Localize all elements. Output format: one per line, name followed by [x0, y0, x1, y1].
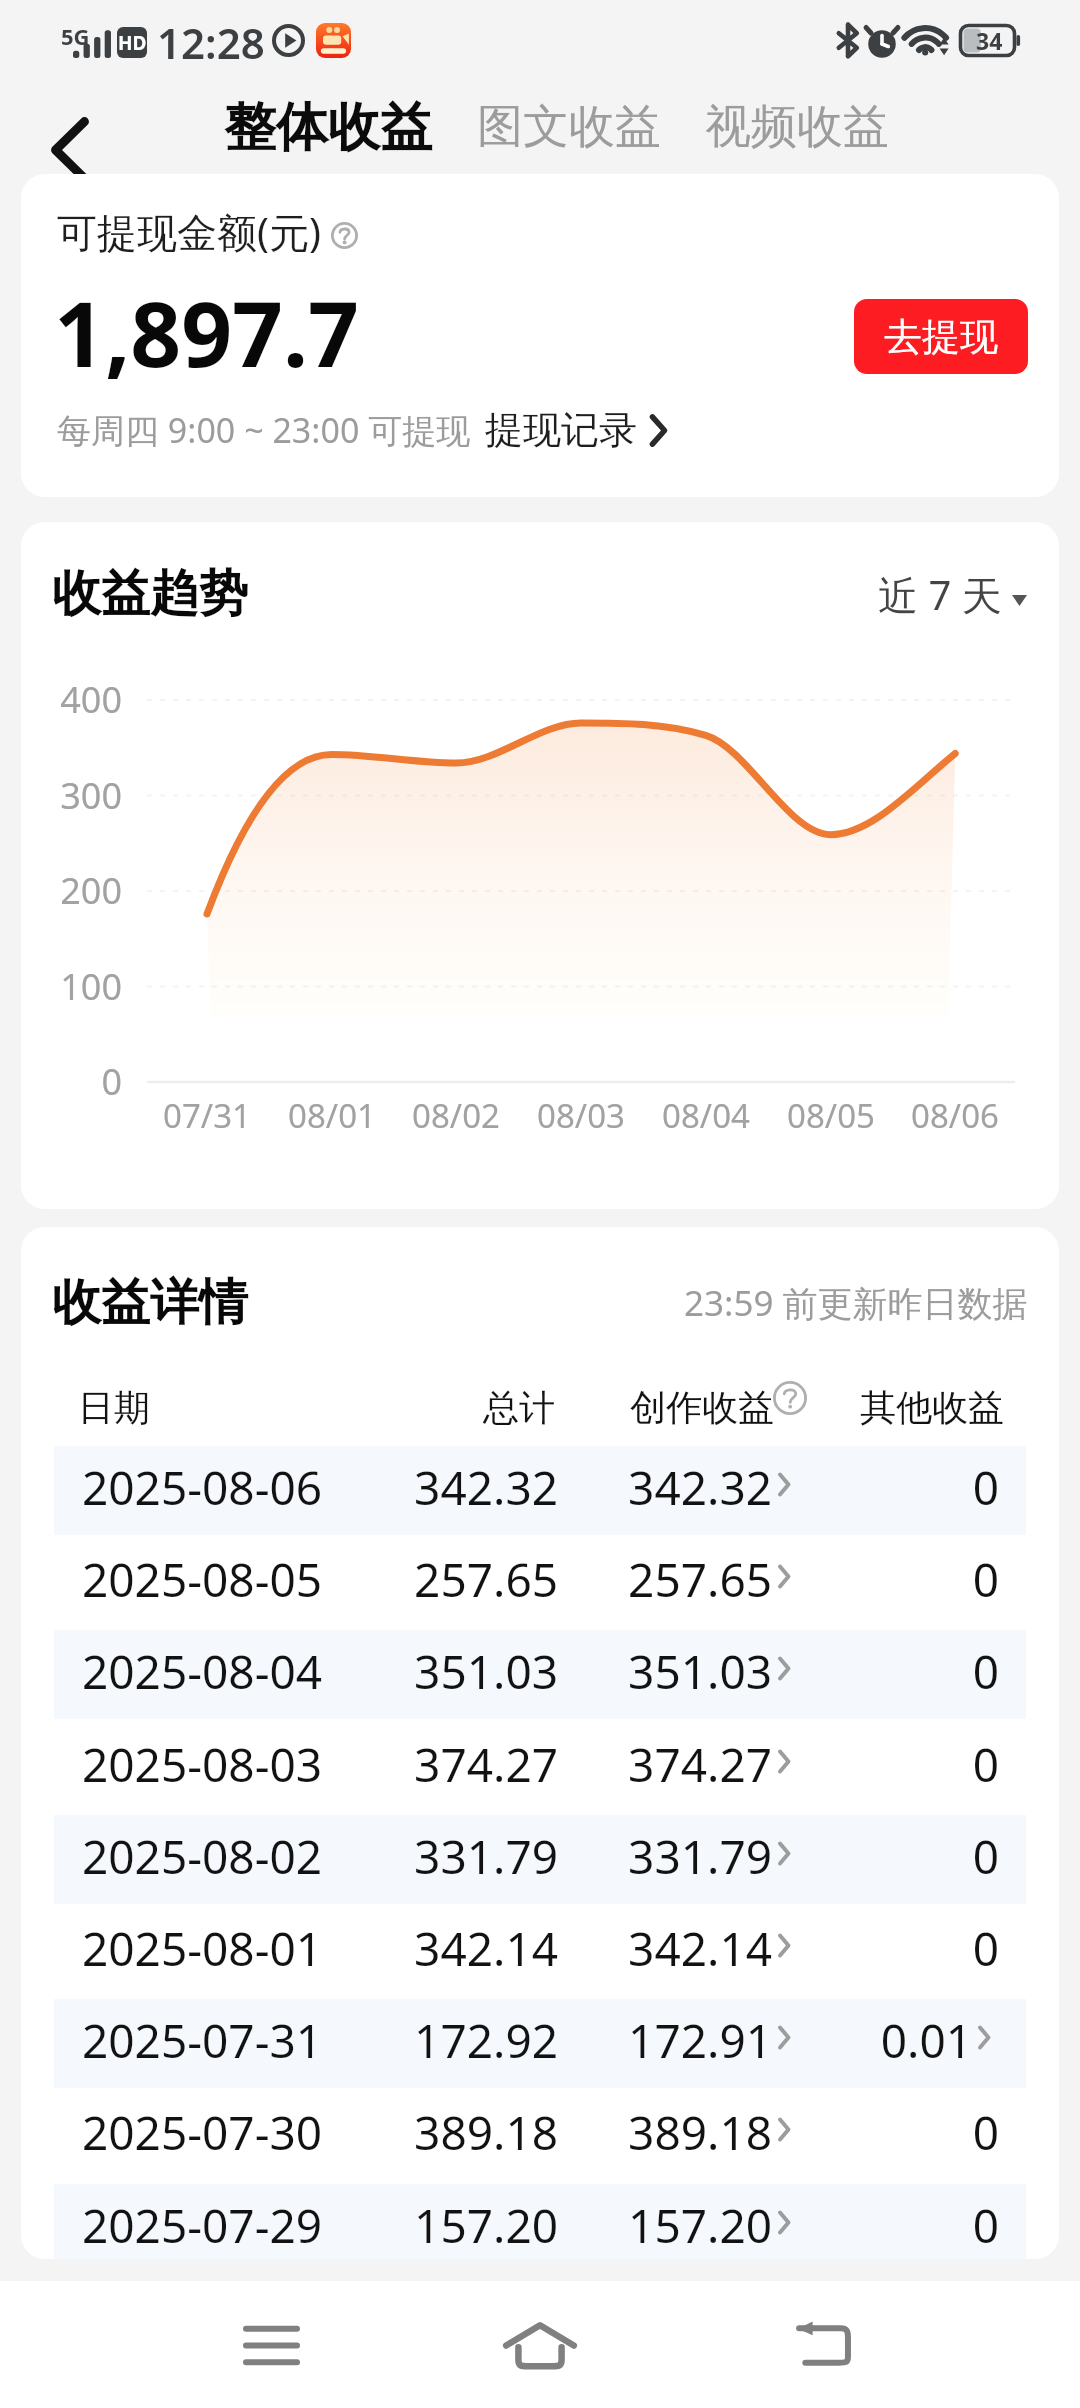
- staticText: 视频收益: [705, 98, 889, 156]
- staticText: 07/31: [137, 1093, 277, 1138]
- staticText: 351.03: [538, 1640, 772, 1703]
- staticText: 157.20: [324, 2194, 558, 2257]
- button[interactable]: 2025-08-05: [54, 1538, 1026, 1627]
- staticText: 300: [22, 771, 122, 820]
- staticText: 08/02: [386, 1093, 526, 1138]
- button[interactable]: Back: [28, 108, 112, 192]
- staticText: 200: [22, 866, 122, 915]
- staticText: 23:59 前更新昨日数据: [684, 1279, 1028, 1327]
- staticText: 2025-08-03: [82, 1733, 323, 1796]
- button[interactable]: 2025-08-03: [54, 1723, 1026, 1812]
- staticText: 08/01: [262, 1093, 402, 1138]
- button[interactable]: 2025-08-01: [54, 1907, 1026, 1996]
- staticText: 400: [22, 675, 122, 724]
- staticText: 近 7 天: [878, 567, 1002, 622]
- staticText: 去提现: [884, 313, 998, 361]
- staticText: 0: [765, 2194, 999, 2257]
- staticText: 整体收益: [224, 95, 432, 161]
- staticText: 08/06: [885, 1093, 1025, 1138]
- staticText: 342.14: [538, 1917, 772, 1980]
- button[interactable]: Recent apps: [201, 2293, 341, 2397]
- staticText: 389.18: [324, 2101, 558, 2164]
- staticText: 可提现金额(元): [57, 204, 321, 259]
- staticText: 374.27: [538, 1733, 772, 1796]
- staticText: 374.27: [324, 1733, 558, 1796]
- staticText: HD: [118, 30, 147, 56]
- button[interactable]: 图文收益: [477, 98, 661, 156]
- staticText: 08/04: [636, 1093, 776, 1138]
- staticText: 0: [765, 1917, 999, 1980]
- staticText: 1,897.7: [54, 272, 359, 393]
- staticText: 08/03: [511, 1093, 651, 1138]
- staticText: 提现记录: [485, 406, 637, 454]
- staticText: 342.32: [324, 1456, 558, 1519]
- staticText: 157.20: [538, 2194, 772, 2257]
- staticText: 100: [22, 962, 122, 1011]
- staticText: 0: [765, 1733, 999, 1796]
- staticText: 创作收益: [630, 1385, 774, 1430]
- button[interactable]: 提现记录: [485, 406, 668, 454]
- staticText: 0.01: [738, 2009, 972, 2072]
- staticText: 257.65: [538, 1548, 772, 1611]
- staticText: 172.92: [324, 2009, 558, 2072]
- staticText: 2025-07-30: [82, 2101, 323, 2164]
- staticText: 2025-07-31: [82, 2009, 323, 2072]
- button[interactable]: 视频收益: [705, 98, 889, 156]
- button[interactable]: 近 7 天: [878, 567, 1027, 622]
- staticText: 2025-08-04: [82, 1640, 323, 1703]
- staticText: 日期: [78, 1385, 150, 1430]
- staticText: 收益趋势: [52, 563, 248, 625]
- staticText: 2025-08-01: [82, 1917, 323, 1980]
- staticText: 34: [976, 25, 1003, 56]
- button[interactable]: Back: [753, 2293, 893, 2397]
- button[interactable]: 2025-08-04: [54, 1630, 1026, 1719]
- staticText: 2025-08-02: [82, 1825, 323, 1888]
- button[interactable]: Home: [470, 2293, 610, 2397]
- button[interactable]: 2025-08-02: [54, 1815, 1026, 1904]
- staticText: 0: [765, 1456, 999, 1519]
- staticText: 342.14: [324, 1917, 558, 1980]
- staticText: 2025-08-06: [82, 1456, 323, 1519]
- staticText: 5G: [61, 21, 90, 51]
- staticText: 0: [765, 1548, 999, 1611]
- staticText: 0: [22, 1057, 122, 1106]
- button[interactable]: 2025-08-06: [54, 1446, 1026, 1535]
- staticText: 331.79: [324, 1825, 558, 1888]
- staticText: 08/05: [761, 1093, 901, 1138]
- staticText: 2025-08-05: [82, 1548, 323, 1611]
- staticText: 2025-07-29: [82, 2194, 323, 2257]
- staticText: 12:28: [157, 14, 265, 71]
- button[interactable]: 2025-07-31: [54, 1999, 1026, 2088]
- staticText: 总计: [355, 1385, 555, 1430]
- button[interactable]: 整体收益: [224, 95, 432, 161]
- staticText: 342.32: [538, 1456, 772, 1519]
- staticText: 其他收益: [860, 1385, 1004, 1430]
- staticText: 收益详情: [52, 1272, 248, 1334]
- staticText: 0: [765, 1825, 999, 1888]
- staticText: 331.79: [538, 1825, 772, 1888]
- button[interactable]: 2025-07-29: [54, 2184, 1026, 2259]
- button[interactable]: 2025-07-30: [54, 2091, 1026, 2180]
- staticText: 图文收益: [477, 98, 661, 156]
- staticText: 389.18: [538, 2101, 772, 2164]
- staticText: 257.65: [324, 1548, 558, 1611]
- staticText: 0: [765, 2101, 999, 2164]
- staticText: 351.03: [324, 1640, 558, 1703]
- staticText: 0: [765, 1640, 999, 1703]
- staticText: 每周四 9:00 ~ 23:00 可提现: [57, 407, 471, 453]
- button[interactable]: 去提现: [854, 299, 1028, 374]
- staticText: 172.91: [538, 2009, 772, 2072]
